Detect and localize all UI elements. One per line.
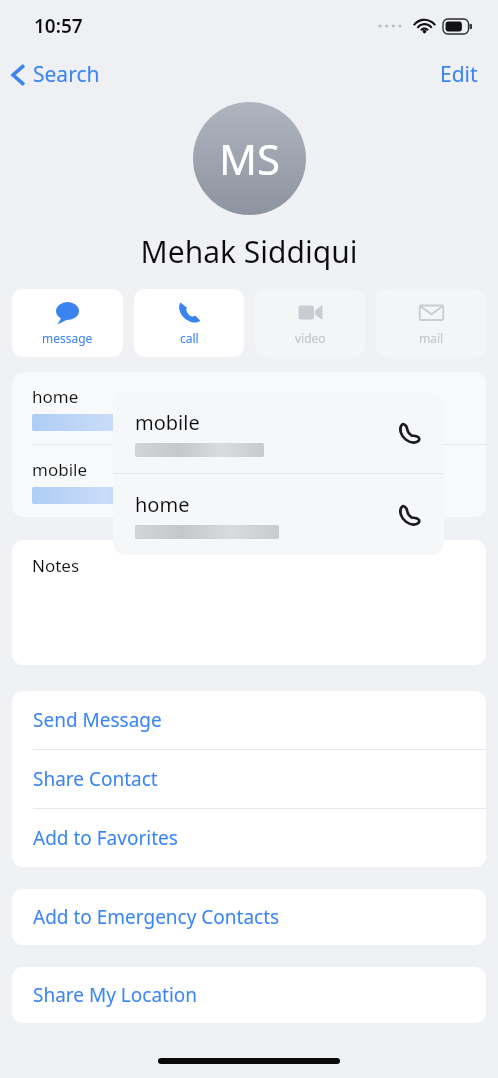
button[interactable]: Share Contact — [12, 750, 486, 808]
button[interactable]: mail — [376, 289, 486, 357]
staticText: Add to Favorites — [33, 825, 178, 851]
staticText: home — [32, 385, 79, 408]
button[interactable]: message — [12, 289, 123, 357]
staticText: Send Message — [33, 707, 162, 733]
button[interactable]: Call home — [392, 498, 426, 532]
staticText: Notes — [32, 554, 80, 577]
button[interactable]: Add to Favorites — [12, 809, 486, 867]
staticText: Edit — [440, 60, 478, 89]
staticText: Search — [33, 60, 100, 89]
staticText: mobile — [32, 458, 87, 481]
button[interactable]: home — [113, 474, 444, 555]
staticText: video — [295, 330, 326, 346]
button[interactable]: video — [255, 289, 365, 357]
button[interactable]: Contact photo — [193, 102, 306, 215]
button[interactable]: mobile — [113, 393, 444, 473]
button[interactable]: Call mobile — [392, 416, 426, 450]
button[interactable]: home — [12, 372, 486, 444]
staticText: Share Contact — [33, 766, 158, 792]
button[interactable]: Share My Location — [12, 967, 486, 1023]
button[interactable]: Notes — [12, 540, 486, 665]
button[interactable]: Edit — [420, 54, 498, 95]
staticText: call — [180, 330, 199, 346]
staticText: 10:57 — [34, 13, 83, 39]
staticText: message — [42, 330, 93, 346]
button[interactable]: Search — [0, 56, 110, 93]
button[interactable]: call — [134, 289, 244, 357]
staticText: mail — [419, 330, 444, 346]
button[interactable]: Send Message — [12, 691, 486, 749]
staticText: Mehak Siddiqui — [0, 231, 498, 272]
button[interactable]: Add to Emergency Contacts — [12, 889, 486, 945]
staticText: home — [135, 491, 190, 518]
staticText: Share My Location — [33, 982, 198, 1008]
staticText: MS — [219, 130, 281, 187]
staticText: mobile — [135, 409, 200, 436]
button[interactable]: mobile — [12, 445, 486, 517]
staticText: Add to Emergency Contacts — [33, 904, 280, 930]
